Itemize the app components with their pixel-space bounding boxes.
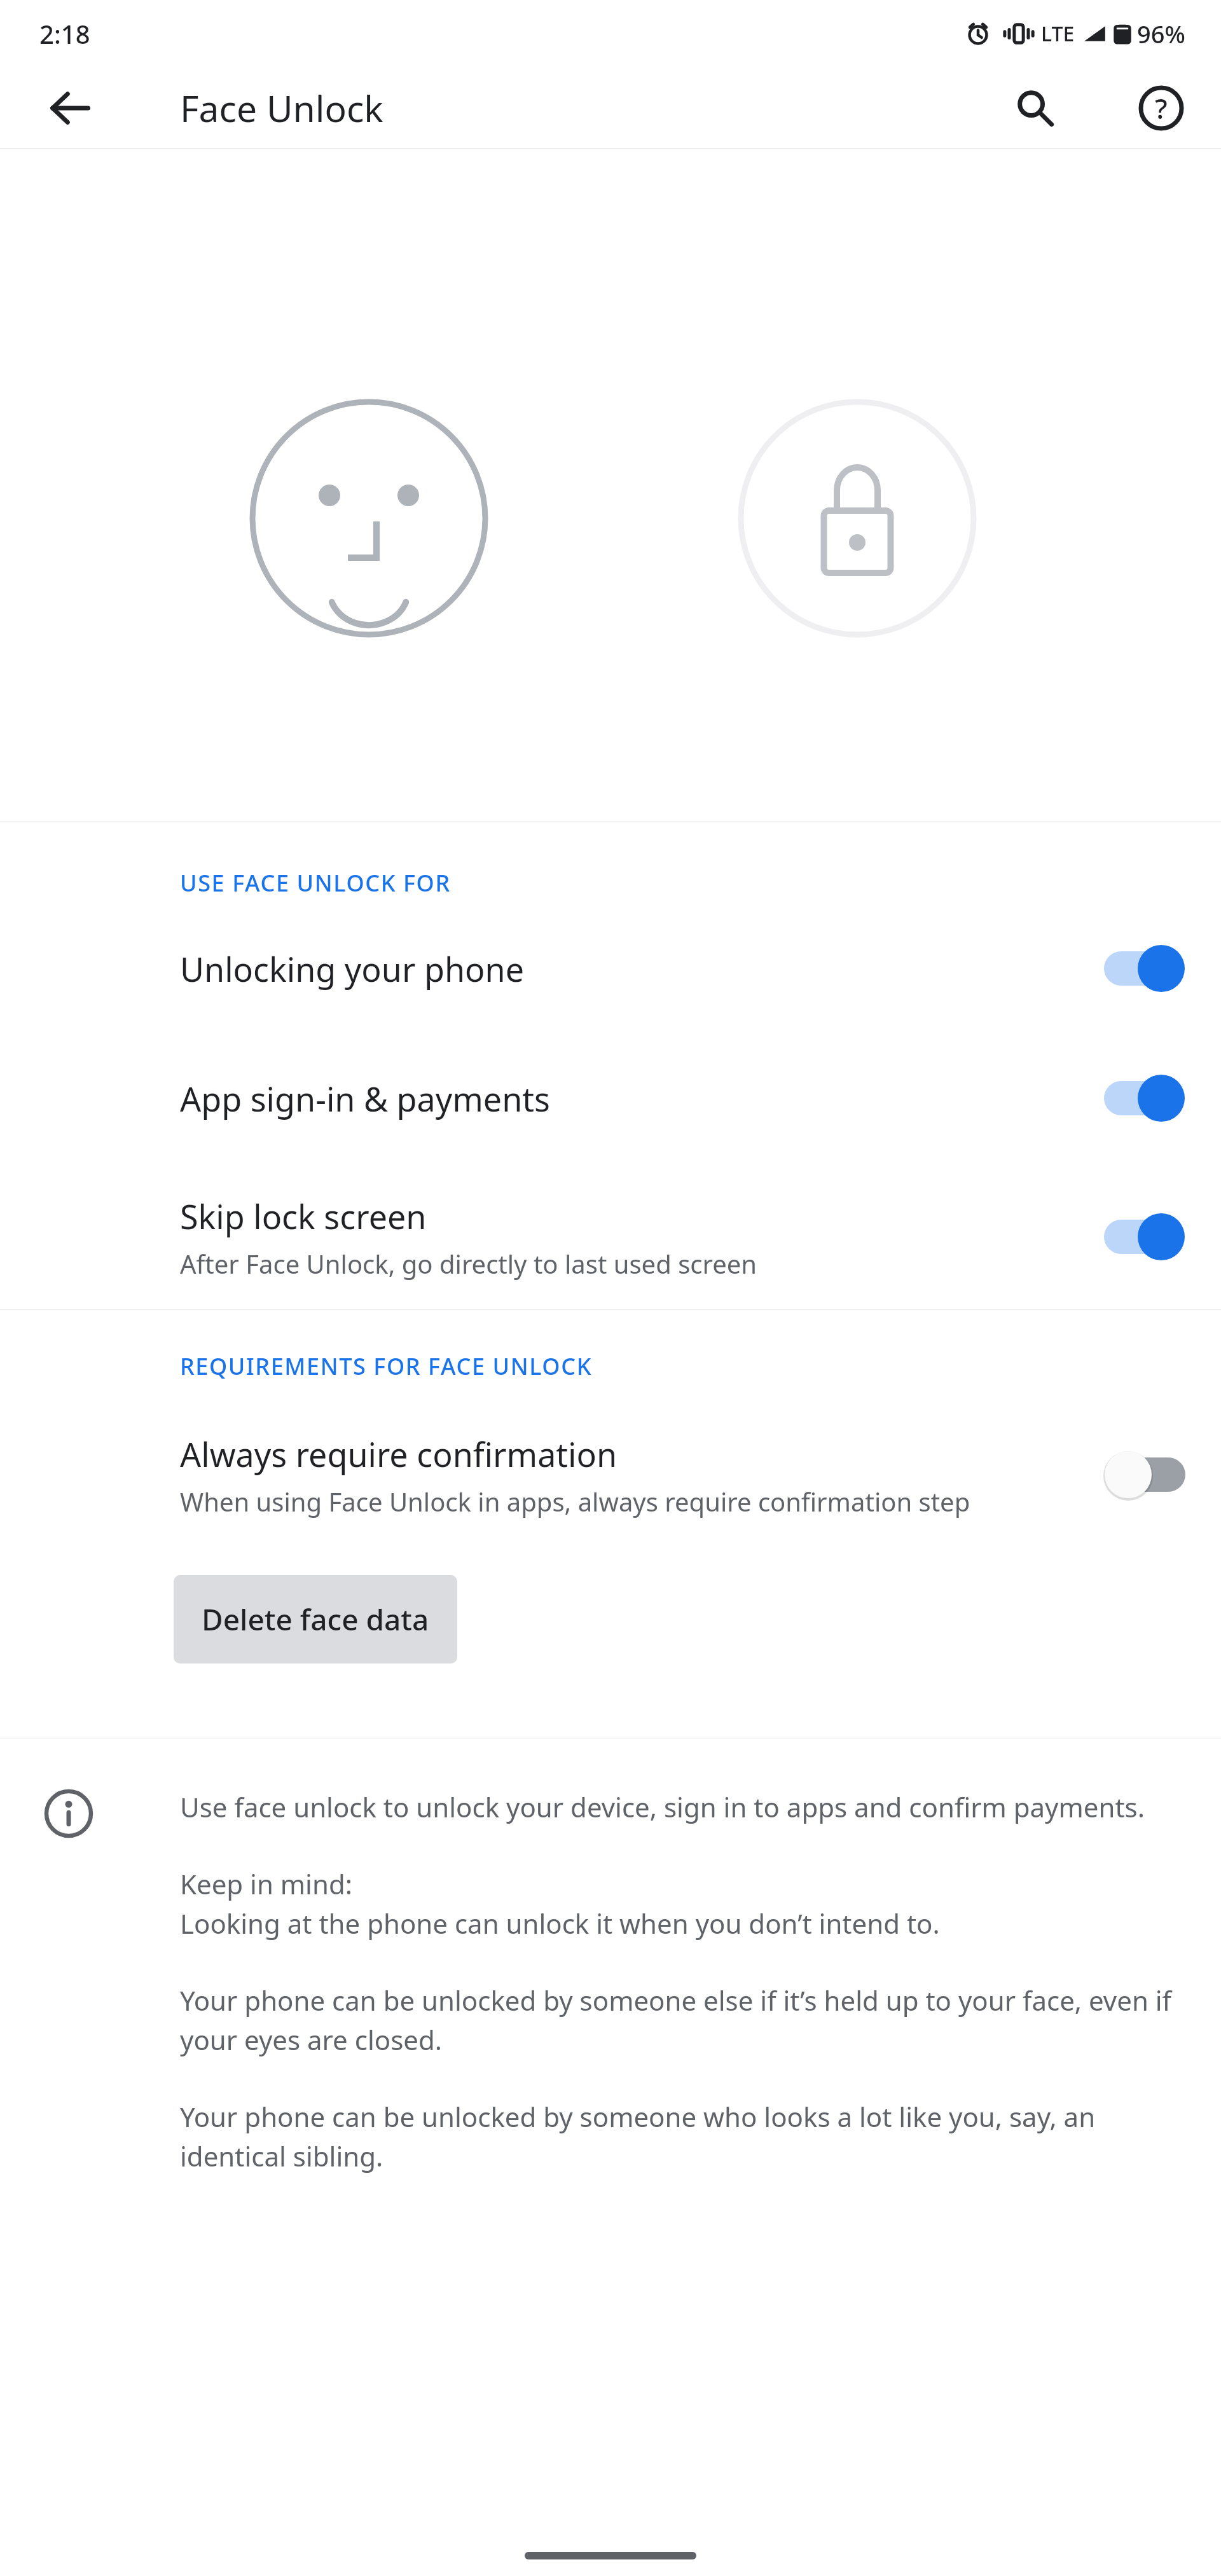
staticText: Use face unlock to unlock your device, s… [180,1789,1145,1825]
staticText: Keep in mind: Looking at the phone can u… [180,1866,940,1941]
button[interactable]: Help [1124,71,1198,145]
button[interactable]: Delete face data [174,1575,457,1663]
button[interactable]: Navigate up [33,71,107,145]
button[interactable]: Always require confirmation [0,1388,1221,1561]
staticText: Your phone can be unlocked by someone wh… [180,2098,1180,2174]
staticText: 96% [1137,17,1185,50]
staticText: Your phone can be unlocked by someone el… [180,1982,1180,2058]
button[interactable]: Skip lock screen [0,1164,1221,1309]
staticText: Always require confirmation [180,1431,617,1477]
button[interactable]: Search [998,71,1072,145]
staticText: When using Face Unlock in apps, always r… [180,1484,970,1519]
staticText: Unlocking your phone [180,946,524,991]
staticText: USE FACE UNLOCK FOR [180,867,451,899]
staticText: REQUIREMENTS FOR FACE UNLOCK [180,1351,592,1382]
button[interactable]: App sign-in & payments [0,1032,1221,1164]
staticText: LTE [1041,20,1075,48]
staticText: Face Unlock [180,83,383,133]
staticText: 2:18 [39,17,90,51]
button[interactable]: Unlocking your phone [0,905,1221,1032]
staticText: Skip lock screen [180,1194,427,1239]
staticText: Delete face data [202,1599,429,1639]
staticText: App sign-in & payments [180,1076,550,1121]
staticText: After Face Unlock, go directly to last u… [180,1246,757,1281]
staticText: ? [1155,89,1168,127]
